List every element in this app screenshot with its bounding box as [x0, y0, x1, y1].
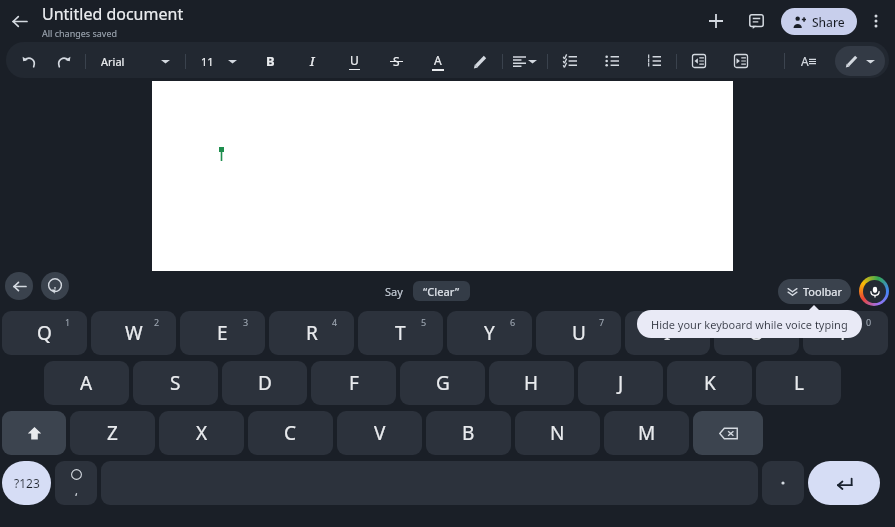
button[interactable]: Text color	[425, 48, 451, 74]
button[interactable]: Period	[762, 461, 804, 505]
button[interactable]: Checklist	[557, 48, 583, 74]
staticText: 4	[332, 316, 338, 328]
button[interactable]: Toolbar	[778, 279, 851, 304]
staticText: X	[196, 420, 208, 446]
button[interactable]: O	[714, 311, 799, 355]
staticText: T	[395, 320, 406, 346]
staticText: C	[284, 420, 297, 446]
button[interactable]: Bold	[257, 48, 283, 74]
button[interactable]: J	[578, 361, 663, 405]
button[interactable]: T	[358, 311, 443, 355]
staticText: A	[80, 370, 93, 396]
button[interactable]: Decrease indent	[686, 48, 712, 74]
button[interactable]: Comments	[739, 4, 773, 38]
button[interactable]: Shift	[2, 411, 66, 455]
button[interactable]: Arial	[95, 50, 176, 73]
button[interactable]: Align	[512, 48, 538, 74]
button[interactable]: Back	[2, 4, 36, 38]
staticText: N	[550, 420, 565, 446]
staticText: ?123	[14, 475, 40, 491]
button[interactable]: ?123	[2, 461, 51, 505]
button[interactable]: Voice typing	[859, 276, 889, 306]
button[interactable]: Increase indent	[728, 48, 754, 74]
button[interactable]: Highlight	[467, 48, 493, 74]
staticText: 3	[243, 316, 249, 328]
button[interactable]: A	[44, 361, 129, 405]
button[interactable]: H	[489, 361, 574, 405]
staticText: Share	[812, 14, 845, 30]
staticText: Say	[385, 284, 403, 299]
button[interactable]	[835, 46, 885, 76]
button[interactable]: F	[311, 361, 396, 405]
staticText: B	[266, 52, 275, 70]
staticText: Hide your keyboard while voice typing	[651, 317, 848, 332]
staticText: D	[258, 370, 272, 396]
button[interactable]: N	[515, 411, 600, 455]
staticText: 2	[154, 316, 160, 328]
button[interactable]: Backspace	[693, 411, 763, 455]
button[interactable]: U	[536, 311, 621, 355]
button[interactable]: Emoji	[55, 461, 97, 505]
staticText: All changes saved	[42, 27, 118, 39]
staticText: Untitled document	[42, 3, 184, 25]
button[interactable]: Y	[447, 311, 532, 355]
button[interactable]: R	[269, 311, 354, 355]
staticText: I	[664, 320, 671, 346]
staticText: S	[170, 370, 181, 396]
button[interactable]: P	[803, 311, 888, 355]
button[interactable]: E	[180, 311, 265, 355]
staticText: L	[794, 370, 804, 396]
button[interactable]: C	[248, 411, 333, 455]
button[interactable]: S	[133, 361, 218, 405]
button[interactable]: “Clear”	[413, 281, 470, 301]
staticText: E	[217, 320, 228, 346]
staticText: Y	[484, 320, 495, 346]
button[interactable]: 11	[195, 50, 243, 73]
button[interactable]: Text style	[795, 48, 821, 74]
button[interactable]: More options	[861, 6, 891, 36]
button[interactable]: Back	[5, 272, 33, 300]
button[interactable]: K	[667, 361, 752, 405]
button[interactable]: G	[400, 361, 485, 405]
staticText: “Clear”	[423, 284, 460, 299]
button[interactable]: W	[91, 311, 176, 355]
staticText: ,	[75, 483, 78, 498]
button[interactable]: Share	[781, 8, 857, 35]
button[interactable]: Numbered list	[641, 48, 667, 74]
button[interactable]: Undo	[16, 48, 42, 74]
button[interactable]: Z	[70, 411, 155, 455]
staticText: 1	[65, 316, 71, 328]
staticText: J	[618, 370, 624, 396]
button[interactable]: Underline	[341, 48, 367, 74]
staticText: O	[749, 320, 764, 346]
button[interactable]: V	[337, 411, 422, 455]
button[interactable]: D	[222, 361, 307, 405]
button[interactable]: Italic	[299, 48, 325, 74]
staticText: G	[436, 370, 450, 396]
staticText: H	[524, 370, 539, 396]
staticText: W	[125, 320, 143, 346]
staticText: 9	[777, 316, 783, 328]
staticText: P	[840, 320, 852, 346]
button[interactable]: X	[159, 411, 244, 455]
staticText: M	[638, 420, 656, 446]
button[interactable]: Redo	[50, 48, 76, 74]
button[interactable]: L	[756, 361, 841, 405]
staticText: Arial	[101, 54, 125, 69]
button[interactable]: Q	[2, 311, 87, 355]
staticText: U	[572, 320, 586, 346]
button[interactable]: New	[699, 4, 733, 38]
staticText: F	[349, 370, 359, 396]
staticText: A	[434, 52, 442, 68]
button[interactable]: B	[426, 411, 511, 455]
button[interactable]: Help	[41, 272, 69, 300]
button[interactable]: Bulleted list	[599, 48, 625, 74]
staticText: Q	[37, 320, 52, 346]
button[interactable]: Strikethrough	[383, 48, 409, 74]
button[interactable]: Enter	[808, 461, 880, 505]
button[interactable]: I	[625, 311, 710, 355]
button[interactable]: M	[604, 411, 689, 455]
staticText: 6	[510, 316, 516, 328]
staticText: R	[306, 320, 318, 346]
